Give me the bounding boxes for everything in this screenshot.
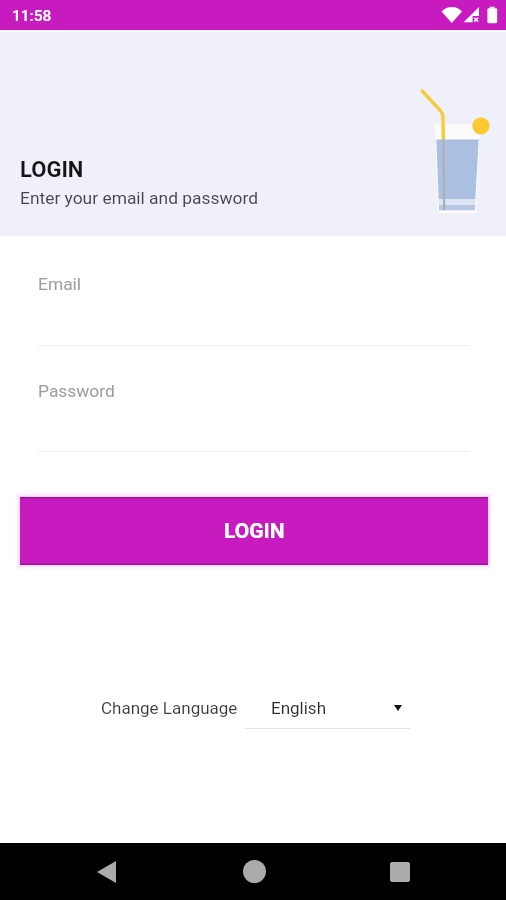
button[interactable]: Home — [225, 843, 283, 900]
staticText: LOGIN — [224, 519, 285, 544]
staticText: English — [271, 698, 327, 718]
button[interactable]: English — [245, 698, 414, 718]
button[interactable]: Back — [77, 843, 135, 900]
staticText: LOGIN — [20, 157, 84, 183]
staticText: Change Language — [101, 698, 238, 718]
staticText: 11:58 — [12, 7, 52, 25]
staticText: Password — [38, 381, 115, 401]
button[interactable]: Recent apps — [371, 843, 429, 900]
staticText: Enter your email and password — [20, 188, 259, 208]
staticText: Email — [38, 274, 82, 294]
button[interactable]: LOGIN — [20, 497, 488, 565]
